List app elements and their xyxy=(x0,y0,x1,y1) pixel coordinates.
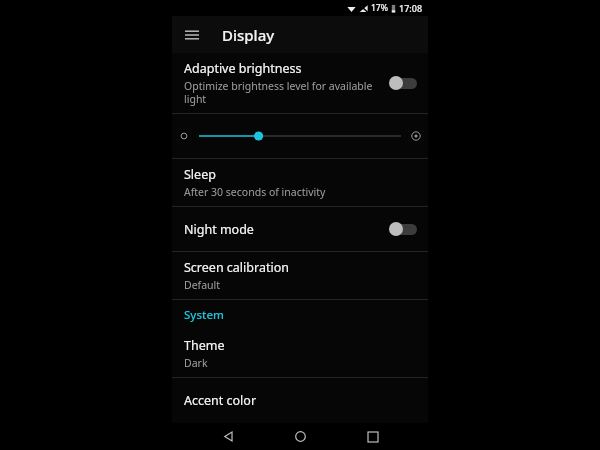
staticText: Optimize brightness level for available … xyxy=(184,79,381,106)
button[interactable]: Back xyxy=(211,423,245,450)
staticText: Dark xyxy=(184,356,208,370)
staticText: After 30 seconds of inactivity xyxy=(184,185,326,199)
staticText: Default xyxy=(184,278,221,292)
button[interactable]: Accent color xyxy=(172,378,428,423)
button[interactable] xyxy=(172,114,428,158)
button[interactable]: Home xyxy=(283,423,317,450)
staticText: Adaptive brightness xyxy=(184,60,302,77)
staticText: 17% xyxy=(371,2,388,14)
staticText: Accent color xyxy=(184,392,257,409)
button[interactable]: Theme xyxy=(172,330,428,377)
button[interactable]: Adaptive brightness xyxy=(172,53,428,113)
staticText: Theme xyxy=(184,337,225,354)
button[interactable]: Night mode xyxy=(172,207,428,251)
staticText: Display xyxy=(222,25,275,45)
button[interactable]: Menu xyxy=(177,20,207,50)
staticText: Sleep xyxy=(184,166,216,183)
staticText: Night mode xyxy=(184,221,254,238)
staticText: System xyxy=(184,307,224,323)
button[interactable]: Screen calibration xyxy=(172,252,428,299)
button[interactable]: Recents xyxy=(356,423,390,450)
staticText: 17:08 xyxy=(399,2,423,14)
staticText: Screen calibration xyxy=(184,259,289,276)
button[interactable]: Sleep xyxy=(172,159,428,206)
